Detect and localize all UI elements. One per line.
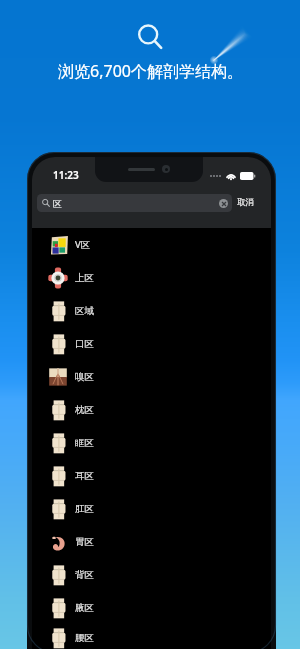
staticText: 嗅区 — [75, 371, 94, 383]
staticText: 腋区 — [75, 602, 94, 614]
staticText: 胃区 — [75, 536, 94, 548]
button[interactable]: V区 — [32, 228, 271, 261]
button[interactable]: 取消 — [237, 197, 254, 208]
button[interactable]: 区域 — [32, 294, 271, 327]
staticText: 浏览6,700个解剖学结构。 — [58, 60, 243, 82]
button[interactable]: 腋区 — [32, 591, 271, 624]
staticText: 枕区 — [75, 404, 94, 416]
button[interactable]: 上区 — [32, 261, 271, 294]
button[interactable]: 枕区 — [32, 393, 271, 426]
staticText: 口区 — [75, 338, 94, 350]
staticText: 11:23 — [53, 168, 79, 182]
staticText: V区 — [75, 238, 91, 251]
staticText: 上区 — [75, 272, 94, 284]
staticText: 眶区 — [75, 437, 94, 449]
button[interactable]: 嗅区 — [32, 360, 271, 393]
button[interactable]: 口区 — [32, 327, 271, 360]
staticText: 肛区 — [75, 503, 94, 515]
button[interactable]: 区 — [37, 194, 232, 212]
staticText: 耳区 — [75, 470, 94, 482]
button[interactable]: 背区 — [32, 558, 271, 591]
staticText: 腰区 — [75, 632, 94, 644]
button[interactable]: 腰区 — [32, 624, 271, 649]
button[interactable]: Clear search — [219, 199, 228, 208]
button[interactable]: 眶区 — [32, 426, 271, 459]
staticText: 背区 — [75, 569, 94, 581]
button[interactable]: 肛区 — [32, 492, 271, 525]
button[interactable]: 胃区 — [32, 525, 271, 558]
staticText: 取消 — [237, 197, 254, 208]
staticText: 区域 — [75, 305, 94, 317]
button[interactable]: 耳区 — [32, 459, 271, 492]
staticText: 区 — [53, 198, 62, 209]
